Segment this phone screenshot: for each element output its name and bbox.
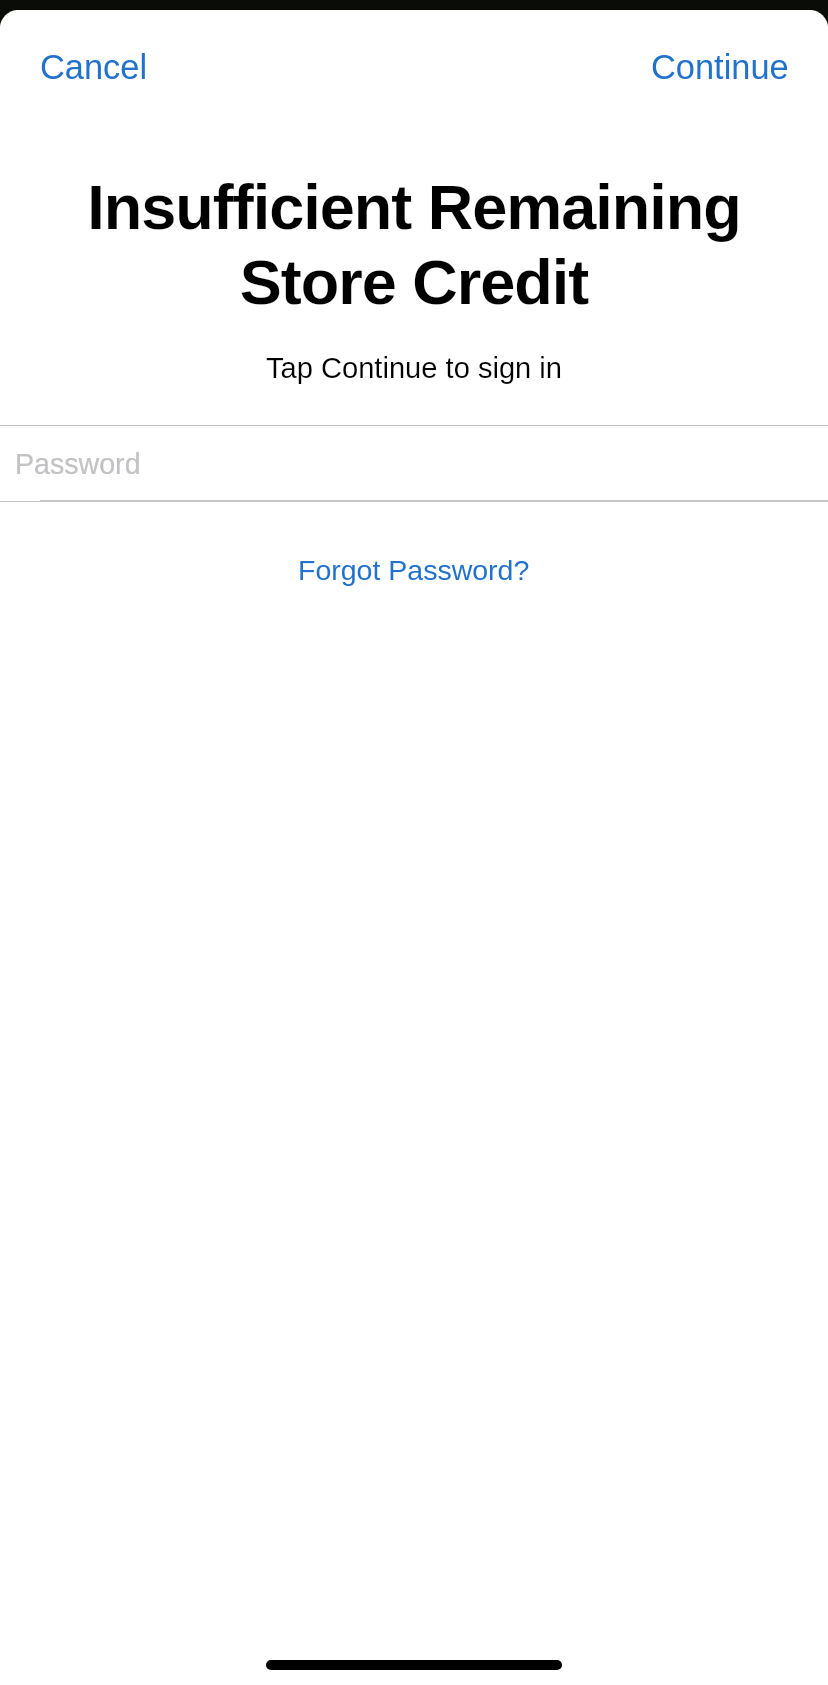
button[interactable]: Continue xyxy=(639,36,801,98)
staticText: Continue xyxy=(651,48,789,86)
staticText: Forgot Password? xyxy=(298,554,530,586)
button[interactable]: Password xyxy=(0,426,828,501)
staticText: Insufficient Remaining Store Credit xyxy=(60,172,768,317)
button[interactable]: Cancel xyxy=(28,36,160,98)
staticText: Cancel xyxy=(40,48,148,86)
staticText: Password xyxy=(15,448,141,480)
staticText: Tap Continue to sign in xyxy=(0,352,828,385)
button[interactable]: Forgot Password? xyxy=(284,542,544,598)
